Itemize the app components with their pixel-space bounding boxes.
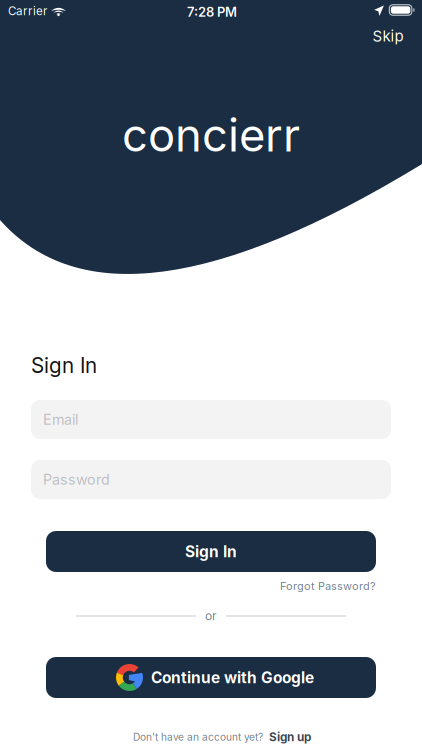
staticText: or xyxy=(205,609,217,623)
button[interactable]: Sign In xyxy=(46,531,376,572)
staticText: Sign up xyxy=(269,730,311,744)
button[interactable]: Continue with Google xyxy=(46,657,376,698)
staticText: Sign In xyxy=(31,353,97,378)
button[interactable]: Sign up xyxy=(269,730,311,744)
staticText: Email xyxy=(43,411,78,428)
staticText: Continue with Google xyxy=(151,668,314,687)
staticText: Skip xyxy=(372,27,403,45)
staticText: Forgot Password? xyxy=(280,579,376,593)
staticText: Sign In xyxy=(185,542,237,561)
staticText: Carrier xyxy=(8,4,47,18)
staticText: concierr xyxy=(122,108,300,162)
staticText: Don't have an account yet? xyxy=(133,731,263,743)
button[interactable]: Forgot Password? xyxy=(46,577,376,595)
staticText: 7:28 PM xyxy=(187,4,237,20)
staticText: Password xyxy=(43,471,110,488)
button[interactable]: Skip xyxy=(361,21,415,51)
